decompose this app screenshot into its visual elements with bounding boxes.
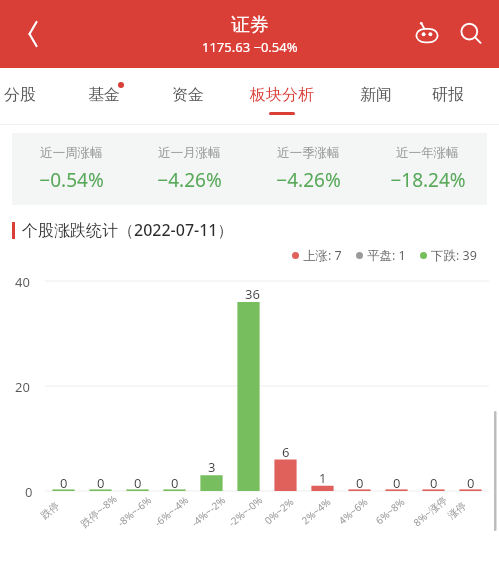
staticText: 跌停~-8%: [77, 492, 119, 530]
staticText: 0: [393, 474, 401, 492]
staticText: 近一月涨幅: [158, 145, 221, 161]
staticText: 36: [245, 285, 260, 303]
staticText: −4.26%: [157, 167, 222, 193]
button[interactable]: Back: [10, 11, 56, 57]
staticText: 0: [134, 474, 142, 492]
staticText: 近一年涨幅: [396, 145, 459, 161]
staticText: 0: [430, 474, 438, 492]
staticText: 证券: [231, 13, 269, 37]
staticText: 0%~2%: [261, 495, 296, 527]
staticText: 0: [60, 474, 68, 492]
staticText: 3: [208, 458, 216, 476]
staticText: 研报: [432, 85, 464, 105]
staticText: 8%~涨停: [410, 493, 450, 529]
staticText: −4.26%: [276, 167, 341, 193]
staticText: 1: [319, 469, 327, 487]
button[interactable]: 平盘: 1: [356, 247, 406, 264]
staticText: -8%~-6%: [114, 492, 155, 530]
staticText: 6%~8%: [372, 495, 407, 527]
staticText: 分股: [4, 85, 36, 105]
staticText: 40: [15, 273, 30, 291]
staticText: 涨停: [445, 499, 469, 522]
staticText: 0: [467, 474, 475, 492]
staticText: 0: [171, 474, 179, 492]
staticText: 跌停: [38, 499, 62, 522]
staticText: 0: [25, 483, 33, 501]
staticText: 20: [15, 378, 30, 396]
staticText: −0.54%: [39, 167, 104, 193]
button[interactable]: Assistant: [405, 12, 449, 56]
staticText: -6%~-4%: [151, 492, 192, 530]
button[interactable]: Search: [449, 12, 493, 56]
staticText: 基金: [88, 85, 120, 105]
button[interactable]: 研报: [418, 68, 477, 125]
staticText: 0: [356, 474, 364, 492]
staticText: 资金: [172, 85, 204, 105]
button[interactable]: 基金: [62, 68, 146, 125]
staticText: 6: [282, 443, 290, 461]
staticText: −18.24%: [390, 167, 466, 193]
staticText: 新闻: [360, 85, 392, 105]
staticText: 近一周涨幅: [40, 145, 103, 161]
staticText: 平盘: 1: [367, 247, 406, 264]
staticText: 板块分析: [250, 85, 314, 105]
button[interactable]: 资金: [146, 68, 230, 125]
staticText: 0: [97, 474, 105, 492]
staticText: 2%~4%: [298, 495, 333, 527]
button[interactable]: 分股: [0, 68, 62, 125]
button[interactable]: 下跌: 39: [420, 247, 477, 264]
staticText: 个股涨跌统计（2022-07-11）: [22, 219, 234, 241]
staticText: -2%~-0%: [225, 492, 266, 530]
button[interactable]: 新闻: [334, 68, 418, 125]
staticText: 4%~6%: [335, 495, 370, 527]
staticText: -4%~-2%: [188, 492, 229, 530]
staticText: 下跌: 39: [431, 247, 477, 264]
staticText: 近一季涨幅: [277, 145, 340, 161]
staticText: 上涨: 7: [303, 247, 342, 264]
staticText: 1175.63 −0.54%: [202, 38, 298, 56]
button[interactable]: 上涨: 7: [292, 247, 342, 264]
button[interactable]: 板块分析: [230, 68, 334, 125]
